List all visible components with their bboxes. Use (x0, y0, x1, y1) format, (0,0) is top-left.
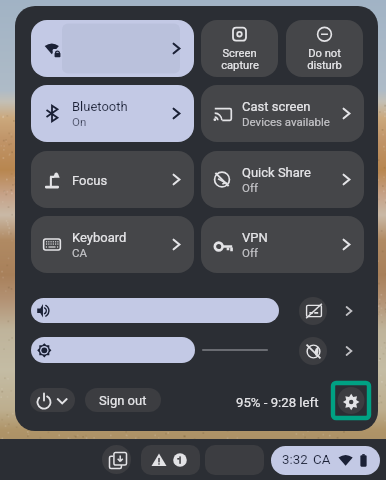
button[interactable]: Display settings (339, 337, 359, 365)
button[interactable]: Volume (31, 298, 279, 323)
staticText: disturb (307, 59, 342, 71)
staticText: On (72, 115, 87, 128)
staticText: VPN (242, 230, 268, 245)
staticText: capture (221, 59, 259, 71)
button[interactable]: Do not disturb (286, 20, 363, 77)
staticText: CA (72, 246, 87, 259)
button[interactable]: Quick Share Off (201, 151, 364, 208)
button[interactable]: Focus (31, 151, 194, 208)
button[interactable]: Status tray (271, 446, 380, 475)
staticText: Do not (308, 47, 341, 59)
staticText: Sign out (99, 393, 147, 408)
staticText: Off (242, 246, 258, 259)
staticText: Keyboard (72, 230, 127, 245)
staticText: Screen (222, 47, 257, 59)
staticText: CA (313, 452, 331, 468)
staticText: Cast screen (242, 99, 311, 114)
button[interactable]: Brightness (31, 337, 195, 363)
button[interactable]: Audio settings (339, 297, 359, 325)
button[interactable]: VPN Off (201, 216, 364, 273)
staticText: Off (242, 181, 258, 194)
button[interactable]: Keyboard CA (31, 216, 194, 273)
button[interactable]: Cast screen (201, 85, 364, 142)
button[interactable]: Shelf item (205, 445, 264, 475)
staticText: 3:32 (282, 452, 308, 468)
button[interactable]: Sign out (85, 388, 161, 412)
button[interactable]: Captions off (299, 297, 327, 325)
button[interactable]: Notifications (141, 445, 200, 475)
button[interactable]: Night light off (299, 337, 327, 365)
button[interactable]: Bluetooth On (31, 85, 194, 142)
staticText: Bluetooth (72, 99, 128, 114)
staticText: Quick Share (242, 165, 312, 180)
button[interactable]: Wi-Fi network (31, 20, 194, 77)
button[interactable]: Power menu (30, 388, 75, 412)
button[interactable]: Screen capture (201, 20, 278, 77)
button[interactable]: Desks (102, 445, 131, 474)
staticText: Devices available (242, 115, 330, 128)
button[interactable]: Settings (333, 383, 369, 418)
staticText: Focus (72, 173, 108, 188)
staticText: 95% - 9:28 left (236, 395, 319, 410)
